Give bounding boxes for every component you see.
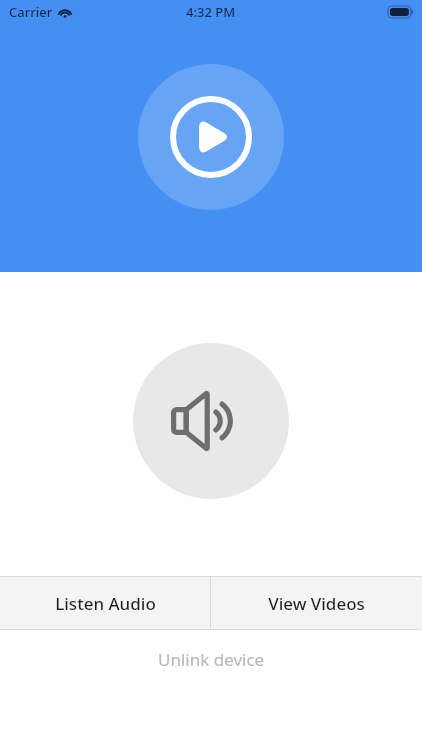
- button[interactable]: Play: [138, 64, 284, 210]
- staticText: View Videos: [268, 592, 365, 615]
- staticText: 4:32 PM: [186, 3, 236, 21]
- button[interactable]: Unlink device: [136, 640, 287, 679]
- button[interactable]: Speaker volume: [133, 343, 289, 499]
- staticText: Listen Audio: [55, 592, 156, 615]
- staticText: Carrier: [9, 3, 53, 21]
- button[interactable]: Listen Audio: [0, 577, 210, 629]
- staticText: Unlink device: [158, 648, 265, 671]
- button[interactable]: View Videos: [211, 577, 422, 629]
